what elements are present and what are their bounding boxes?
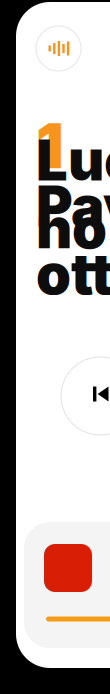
staticText: 1 xyxy=(36,109,64,183)
staticText: Luciano xyxy=(36,126,110,262)
staticText: Pavarotti xyxy=(36,172,110,308)
